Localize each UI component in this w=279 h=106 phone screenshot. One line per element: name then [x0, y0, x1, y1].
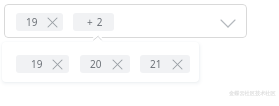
button[interactable]: 19 — [16, 55, 69, 73]
other: Remove 20 — [113, 60, 122, 69]
other: Remove 19 — [53, 60, 62, 69]
staticText: 20 — [90, 57, 102, 71]
staticText: 21 — [150, 57, 162, 71]
other: Expand — [221, 20, 235, 27]
button[interactable]: 21 — [140, 55, 190, 73]
staticText: 19 — [26, 15, 38, 29]
staticText: 19 — [31, 57, 43, 71]
button[interactable]: 19 — [16, 13, 63, 31]
staticText: 金蝶云社区技术社区 — [229, 90, 276, 97]
staticText: + 2 — [87, 15, 104, 29]
button[interactable]: 19 — [4, 4, 247, 38]
button[interactable]: 20 — [80, 55, 130, 73]
other: Remove 19 — [48, 18, 57, 27]
other: Remove 21 — [173, 60, 182, 69]
button[interactable]: + 2 — [73, 13, 114, 31]
